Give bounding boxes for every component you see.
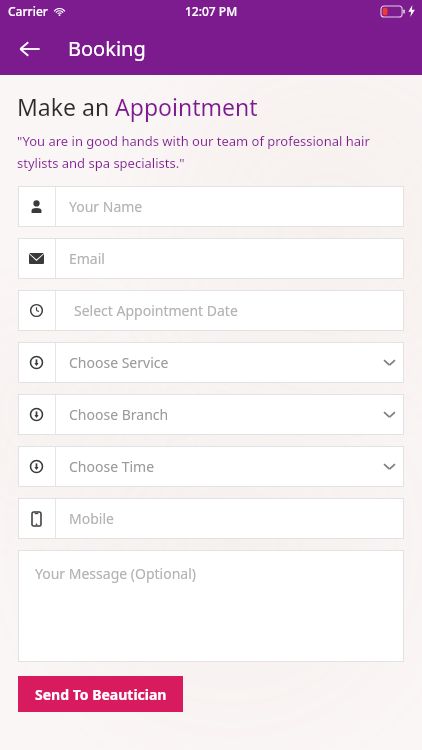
- staticText: Carrier: [8, 3, 48, 19]
- staticText: Make an Appointment: [17, 91, 258, 122]
- button[interactable]: Your Name: [18, 186, 404, 227]
- button[interactable]: Your Message (Optional): [18, 550, 404, 662]
- button[interactable]: Send To Beautician: [18, 676, 183, 712]
- staticText: Your Name: [69, 197, 404, 216]
- button[interactable]: Mobile: [18, 498, 404, 539]
- staticText: Choose Branch: [69, 405, 374, 424]
- button[interactable]: Back: [10, 29, 50, 69]
- staticText: "You are in good hands with our team of …: [17, 132, 405, 172]
- staticText: 12:07 PM: [185, 3, 238, 19]
- staticText: Booking: [68, 35, 146, 62]
- button[interactable]: Email: [18, 238, 404, 279]
- staticText: Email: [69, 249, 404, 268]
- button[interactable]: Choose Time: [18, 446, 404, 487]
- button[interactable]: Choose Service: [18, 342, 404, 383]
- staticText: Your Message (Optional): [35, 564, 196, 583]
- staticText: Select Appointment Date: [74, 301, 404, 320]
- staticText: Choose Service: [69, 353, 374, 372]
- staticText: Mobile: [69, 509, 404, 528]
- staticText: Choose Time: [69, 457, 374, 476]
- button[interactable]: Choose Branch: [18, 394, 404, 435]
- button[interactable]: Select Appointment Date: [18, 290, 404, 331]
- staticText: Send To Beautician: [35, 685, 167, 704]
